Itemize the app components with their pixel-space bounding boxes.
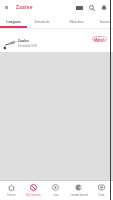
staticText: Teams <box>99 19 110 24</box>
staticText: Live <box>53 193 59 197</box>
button[interactable]: Schedule <box>27 14 57 28</box>
staticText: Mumbai IND <box>18 44 38 48</box>
staticText: Leagues <box>6 19 21 24</box>
staticText: My Games <box>26 193 41 197</box>
button[interactable]: Live <box>44 181 67 200</box>
button[interactable]: Search <box>86 2 97 13</box>
staticText: Schedule <box>34 19 50 24</box>
button[interactable]: Chat <box>90 181 113 200</box>
button[interactable]: Leaderboard <box>67 181 90 200</box>
button[interactable]: Menu <box>2 3 11 12</box>
staticText: Matches <box>69 19 84 24</box>
staticText: Leaderboard <box>70 193 88 197</box>
button[interactable]: Notifications <box>98 2 109 13</box>
staticText: Chat <box>98 193 105 197</box>
button[interactable]: Teams <box>95 14 113 28</box>
staticText: Match <box>94 37 105 42</box>
button[interactable]: Home <box>0 181 22 200</box>
button[interactable]: Matches <box>57 14 95 28</box>
button[interactable]: Language <box>74 2 85 13</box>
button[interactable]: My Games <box>22 181 44 200</box>
staticText: Zaalee <box>18 38 30 43</box>
button[interactable]: Match <box>92 36 107 42</box>
staticText: Home <box>7 193 16 197</box>
button[interactable]: Leagues <box>0 14 27 28</box>
staticText: Zaalee <box>16 4 33 11</box>
button[interactable]: Zaalee <box>0 29 113 52</box>
